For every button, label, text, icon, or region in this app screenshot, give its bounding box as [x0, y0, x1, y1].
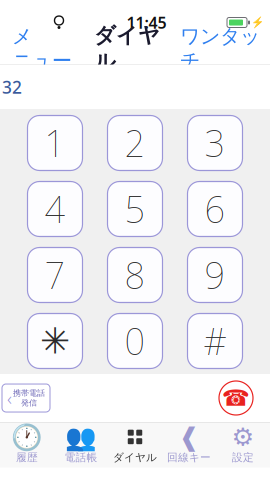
button[interactable]: #	[187, 313, 242, 368]
button[interactable]: 携帯電話発信	[2, 384, 50, 412]
button[interactable]: 8	[107, 247, 162, 302]
staticText: 6	[204, 185, 225, 233]
button[interactable]: 6	[187, 181, 242, 236]
staticText: ❰	[178, 423, 199, 451]
staticText: ⚡	[251, 16, 264, 29]
staticText: 2	[124, 119, 145, 167]
button[interactable]: メニュー	[4, 17, 80, 80]
staticText: 7	[44, 251, 65, 299]
staticText: 8	[124, 251, 145, 299]
staticText: 👥	[65, 422, 97, 451]
staticText: ⚙	[231, 423, 254, 451]
button[interactable]: ワンタッチ	[174, 17, 266, 80]
staticText: 9	[204, 251, 225, 299]
button[interactable]: 発信	[219, 381, 253, 415]
staticText: 携帯電話	[13, 388, 45, 398]
staticText: 回線キー	[167, 451, 211, 464]
staticText: ダイヤル	[113, 451, 157, 464]
staticText: ✳	[40, 321, 70, 361]
staticText: ダイヤル	[94, 22, 160, 75]
staticText: 32	[2, 75, 22, 98]
staticText: 3	[204, 119, 225, 167]
staticText: ☎	[222, 385, 250, 411]
button[interactable]: 1	[27, 115, 82, 170]
staticText: 0	[124, 317, 145, 365]
staticText: 発信	[21, 398, 37, 408]
button[interactable]: 👥	[54, 422, 108, 467]
staticText: 4	[44, 185, 65, 233]
button[interactable]: 5	[107, 181, 162, 236]
button[interactable]: 🕐	[0, 422, 54, 467]
button[interactable]: 4	[27, 181, 82, 236]
button[interactable]: 0	[107, 313, 162, 368]
staticText: 設定	[232, 451, 254, 464]
button[interactable]: ✳	[27, 313, 82, 368]
button[interactable]: 3	[187, 115, 242, 170]
button[interactable]: 2	[107, 115, 162, 170]
staticText: 履歴	[16, 451, 38, 464]
staticText: 11:45	[126, 12, 166, 33]
button[interactable]: 7	[27, 247, 82, 302]
staticText: ‹	[7, 386, 12, 410]
staticText: 電話帳	[64, 451, 97, 464]
staticText: 5	[124, 185, 145, 233]
staticText: 🕐	[11, 422, 43, 451]
staticText: メニュー	[12, 24, 72, 73]
staticText: ワンタッチ	[180, 24, 260, 73]
staticText: #	[203, 317, 226, 365]
button[interactable]: ダイヤル	[108, 422, 162, 467]
button[interactable]: ⚙	[216, 422, 270, 467]
button[interactable]: 9	[187, 247, 242, 302]
button[interactable]: ❰	[162, 422, 216, 467]
staticText: 1	[44, 119, 65, 167]
